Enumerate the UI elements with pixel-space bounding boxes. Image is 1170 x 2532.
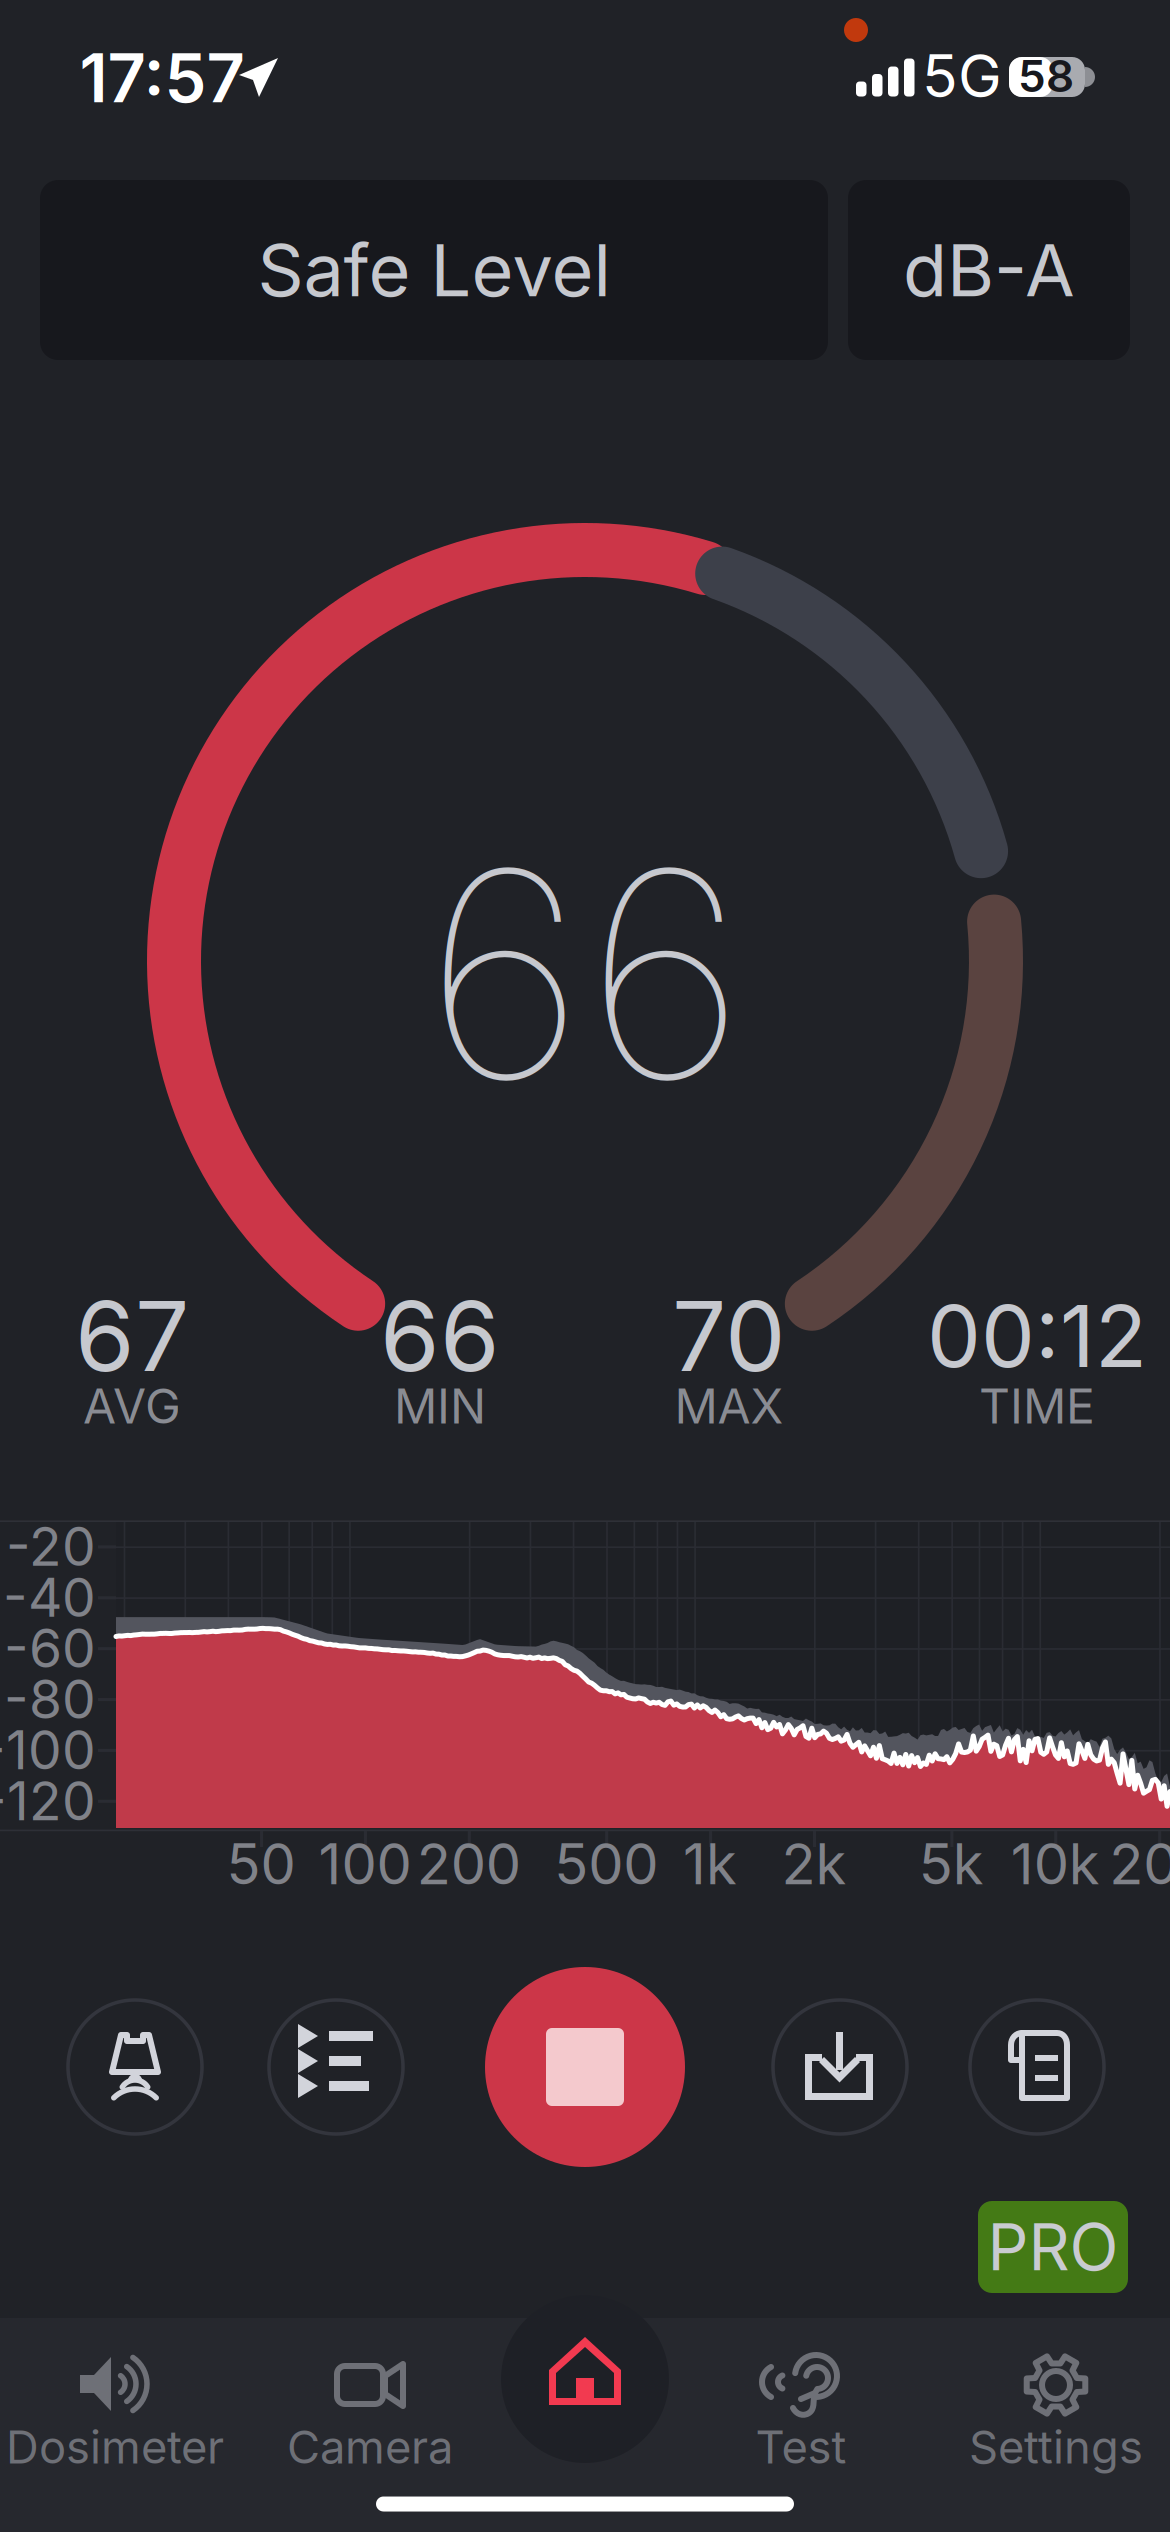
button[interactable]: Safe Level [40, 180, 828, 360]
staticText: Settings [969, 2420, 1143, 2474]
button[interactable]: Stop recording [485, 1967, 685, 2167]
staticText: -100 [0, 1718, 96, 1782]
staticText: -120 [0, 1768, 96, 1833]
button[interactable]: Settings [906, 2351, 1170, 2473]
staticText: MIN [394, 1377, 486, 1435]
staticText: -20 [6, 1514, 96, 1579]
staticText: 20k [1109, 1830, 1170, 1898]
button[interactable]: Dosimeter [0, 2351, 265, 2473]
button[interactable]: Calibrate [68, 2000, 202, 2134]
staticText: Camera [287, 2420, 453, 2474]
button[interactable]: Camera [220, 2351, 520, 2473]
button[interactable]: Levels list [269, 2000, 403, 2134]
staticText: Test [755, 2420, 846, 2474]
staticText: PRO [987, 2208, 1118, 2286]
staticText: 200 [417, 1830, 521, 1898]
staticText: 66 [380, 1278, 500, 1394]
staticText: dB-A [903, 226, 1075, 313]
button[interactable]: PRO [978, 2201, 1128, 2293]
button[interactable]: Save measurement [773, 2000, 907, 2134]
button[interactable]: Home [468, 2289, 702, 2469]
staticText: 70 [672, 1278, 786, 1394]
staticText: 100 [318, 1830, 411, 1898]
staticText: -40 [3, 1565, 96, 1629]
staticText: AVG [83, 1377, 181, 1435]
staticText: 58 [1018, 49, 1074, 103]
staticText: 1k [683, 1830, 737, 1898]
staticText: 2k [781, 1830, 846, 1898]
staticText: 17:57 [79, 38, 244, 118]
staticText: -60 [4, 1616, 96, 1680]
button[interactable]: dB-A [848, 180, 1130, 360]
staticText: 00:12 [927, 1284, 1147, 1388]
staticText: 5k [919, 1830, 984, 1898]
staticText: Safe Level [257, 226, 610, 313]
staticText: 66 [424, 801, 746, 1147]
staticText: Dosimeter [6, 2420, 224, 2474]
staticText: 50 [226, 1830, 295, 1898]
staticText: -80 [4, 1667, 96, 1731]
staticText: 10k [1011, 1830, 1100, 1898]
staticText: 5G [922, 40, 1002, 111]
staticText: MAX [674, 1377, 783, 1435]
staticText: TIME [979, 1377, 1095, 1435]
staticText: 67 [75, 1278, 189, 1394]
button[interactable]: Report [970, 2000, 1104, 2134]
staticText: 500 [554, 1830, 658, 1898]
button[interactable]: Test [651, 2351, 951, 2473]
